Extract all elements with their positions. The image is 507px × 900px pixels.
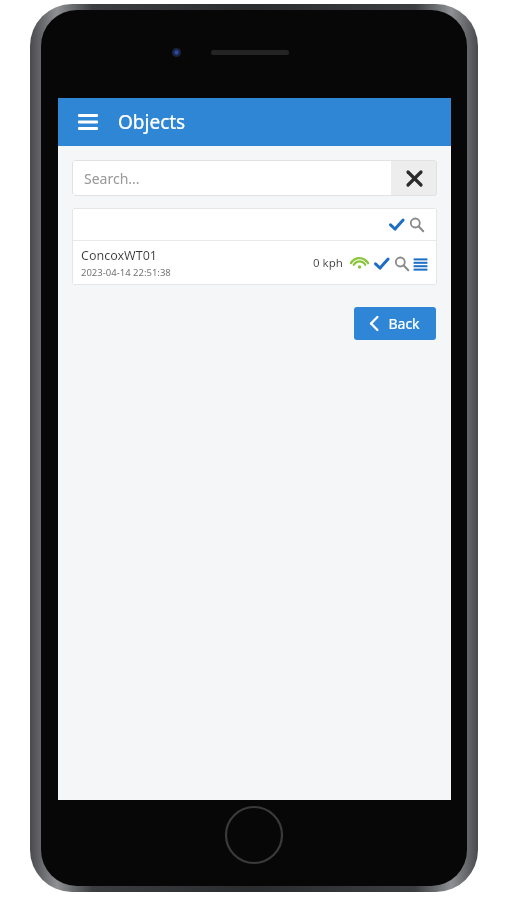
staticText: Back <box>388 314 420 333</box>
staticText: ConcoxWT01 <box>81 247 157 264</box>
staticText: 0 kph <box>313 255 343 271</box>
button[interactable]: Open navigation menu <box>70 104 106 140</box>
button[interactable] <box>72 208 437 240</box>
button[interactable]: Clear search <box>391 160 437 196</box>
button[interactable]: ConcoxWT01 <box>72 241 437 285</box>
staticText: Search... <box>84 169 140 188</box>
staticText: Objects <box>118 109 186 135</box>
button[interactable]: Back <box>354 307 436 340</box>
button[interactable]: Search... <box>72 160 391 196</box>
staticText: 2023-04-14 22:51:38 <box>81 266 171 279</box>
